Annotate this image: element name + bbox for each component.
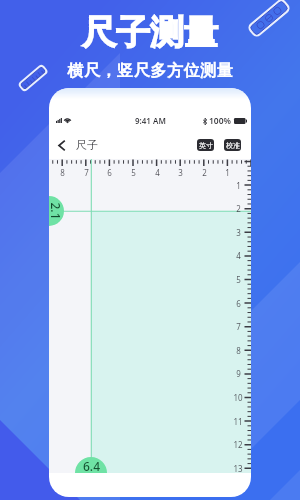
staticText: 7 xyxy=(84,167,89,178)
staticText: 9:41 AM xyxy=(135,115,166,126)
staticText: 1 xyxy=(225,167,230,178)
staticText: 尺子测量 xyxy=(82,11,218,54)
button[interactable]: Back xyxy=(55,136,101,154)
staticText: 5 xyxy=(131,167,136,178)
staticText: 100% xyxy=(209,115,232,127)
other: Back xyxy=(58,139,66,152)
staticText: 1 xyxy=(236,180,241,191)
staticText: 2 xyxy=(202,167,207,178)
staticText: 5 xyxy=(236,274,241,285)
staticText: 6 xyxy=(236,298,241,309)
staticText: 2 xyxy=(236,203,241,214)
staticText: 11 xyxy=(233,416,243,427)
staticText: 尺子 xyxy=(76,138,98,152)
staticText: 6.4 xyxy=(83,458,100,473)
staticText: 3 xyxy=(178,167,183,178)
button[interactable]: 校准 xyxy=(224,139,241,151)
staticText: 10 xyxy=(233,392,243,403)
staticText: 2.1 xyxy=(49,202,63,219)
staticText: 8 xyxy=(60,167,65,178)
staticText: 6 xyxy=(107,167,112,178)
staticText: 校准 xyxy=(226,141,240,150)
staticText: 横尺，竖尺多方位测量 xyxy=(67,61,233,81)
staticText: 9 xyxy=(236,368,241,379)
staticText: 英寸 xyxy=(199,141,213,150)
button[interactable]: 英寸 xyxy=(197,139,214,151)
staticText: 8 xyxy=(236,345,241,356)
staticText: 12 xyxy=(233,439,243,450)
staticText: 7 xyxy=(236,321,241,332)
staticText: 13 xyxy=(233,463,243,473)
staticText: 3 xyxy=(236,227,241,238)
staticText: 4 xyxy=(155,167,160,178)
staticText: 4 xyxy=(236,250,241,261)
